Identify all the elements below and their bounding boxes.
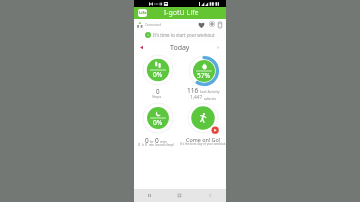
staticText: min	[159, 139, 167, 144]
staticText: Today	[170, 43, 190, 53]
staticText: kcal Activity	[199, 89, 220, 94]
staticText: Connected	[145, 23, 162, 27]
button[interactable]: Device	[214, 19, 225, 30]
button[interactable]: Recents	[134, 189, 164, 202]
button[interactable]: Heart rate	[196, 19, 207, 30]
button[interactable]: Previous day	[137, 43, 146, 52]
staticText: 0	[145, 136, 149, 145]
staticText: 0	[145, 142, 148, 147]
staticText: 0%	[153, 118, 163, 127]
button[interactable]: Home	[164, 189, 195, 202]
staticText: Come on! Go!	[186, 136, 221, 143]
staticText: 57%	[197, 71, 211, 80]
button[interactable]: RUN	[186, 101, 220, 135]
button[interactable]: FLAME	[187, 54, 221, 88]
button[interactable]: Brightness	[206, 18, 217, 29]
staticText: It's the best day of your workout	[180, 142, 226, 146]
staticText: 0	[155, 136, 159, 145]
staticText: h	[141, 143, 145, 147]
staticText: It's time to start your workout	[153, 32, 215, 38]
staticText: 0	[138, 142, 141, 147]
staticText: Life	[139, 10, 147, 16]
button[interactable]: MOON	[141, 101, 175, 135]
button[interactable]: STEPS	[141, 53, 175, 87]
staticText: calories	[203, 96, 217, 101]
staticText: Steps	[152, 94, 162, 99]
button[interactable]: Next day	[214, 43, 223, 52]
staticText: I-gotU Life	[164, 8, 199, 17]
staticText: 1,447	[190, 94, 203, 101]
button[interactable]: Back	[195, 189, 226, 202]
staticText: min (sound sleep)	[148, 143, 174, 147]
staticText: 116	[187, 86, 199, 95]
button[interactable]: I-gotU Life logo	[138, 9, 147, 17]
staticText: 0%	[153, 70, 163, 79]
staticText: 0	[156, 87, 160, 95]
staticText: hr	[149, 139, 155, 144]
